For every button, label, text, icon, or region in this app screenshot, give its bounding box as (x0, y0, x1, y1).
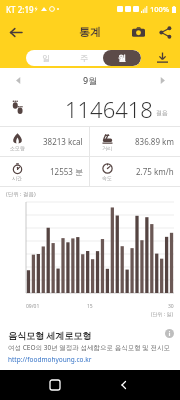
button[interactable]: 일 (26, 50, 65, 66)
button[interactable]: Download (154, 49, 171, 66)
button[interactable]: 음식모형 세계로모형 (0, 323, 180, 370)
staticText: (단위 : 걸음) (6, 190, 36, 198)
button[interactable]: Back (111, 372, 137, 398)
staticText: 일 (42, 53, 50, 63)
staticText: 음식모형 세계로모형 (8, 329, 92, 341)
button[interactable]: Camera (128, 22, 148, 42)
button[interactable]: Back (4, 21, 26, 43)
button[interactable]: 거리 (90, 127, 180, 156)
staticText: http://foodmohyoung.co.kr (8, 355, 92, 364)
button[interactable]: Home (42, 372, 68, 398)
staticText: 월 (118, 53, 126, 63)
staticText: 주 (80, 53, 88, 63)
staticText: 30 (168, 303, 174, 310)
staticText: 걸음 (156, 109, 168, 117)
button[interactable]: 주 (65, 50, 103, 66)
staticText: 09/01 (26, 303, 40, 310)
button[interactable]: 시간 (0, 157, 89, 186)
staticText: 1146418 (65, 94, 153, 124)
staticText: 여성 CEO의 30년 열정과 섬세함으로 음식모형 및 전시모형 … (8, 343, 174, 352)
staticText: 2.75 km/h (136, 166, 174, 177)
staticText: 9월 (83, 74, 98, 86)
staticText: 시간 (12, 175, 22, 181)
staticText: 거리 (102, 145, 112, 151)
button[interactable]: Previous month (10, 72, 26, 88)
button[interactable]: Ad info (165, 329, 174, 338)
staticText: 836.89 km (135, 136, 174, 147)
button[interactable]: Share (155, 22, 175, 42)
button[interactable]: 월 (103, 50, 141, 66)
staticText: 12553 분 (50, 166, 83, 177)
button[interactable]: Next month (154, 72, 170, 88)
staticText: 15 (87, 303, 93, 310)
staticText: 100% (150, 4, 170, 14)
staticText: (단위 : 일) (0, 311, 173, 318)
button[interactable]: 속도 (90, 157, 180, 186)
staticText: 소모량 (10, 145, 25, 151)
staticText: 통계 (79, 25, 101, 39)
staticText: 속도 (102, 175, 112, 181)
staticText: 38213 kcal (43, 136, 83, 147)
button[interactable]: 소모량 (0, 127, 89, 156)
staticText: KT 2:19 (6, 4, 34, 15)
